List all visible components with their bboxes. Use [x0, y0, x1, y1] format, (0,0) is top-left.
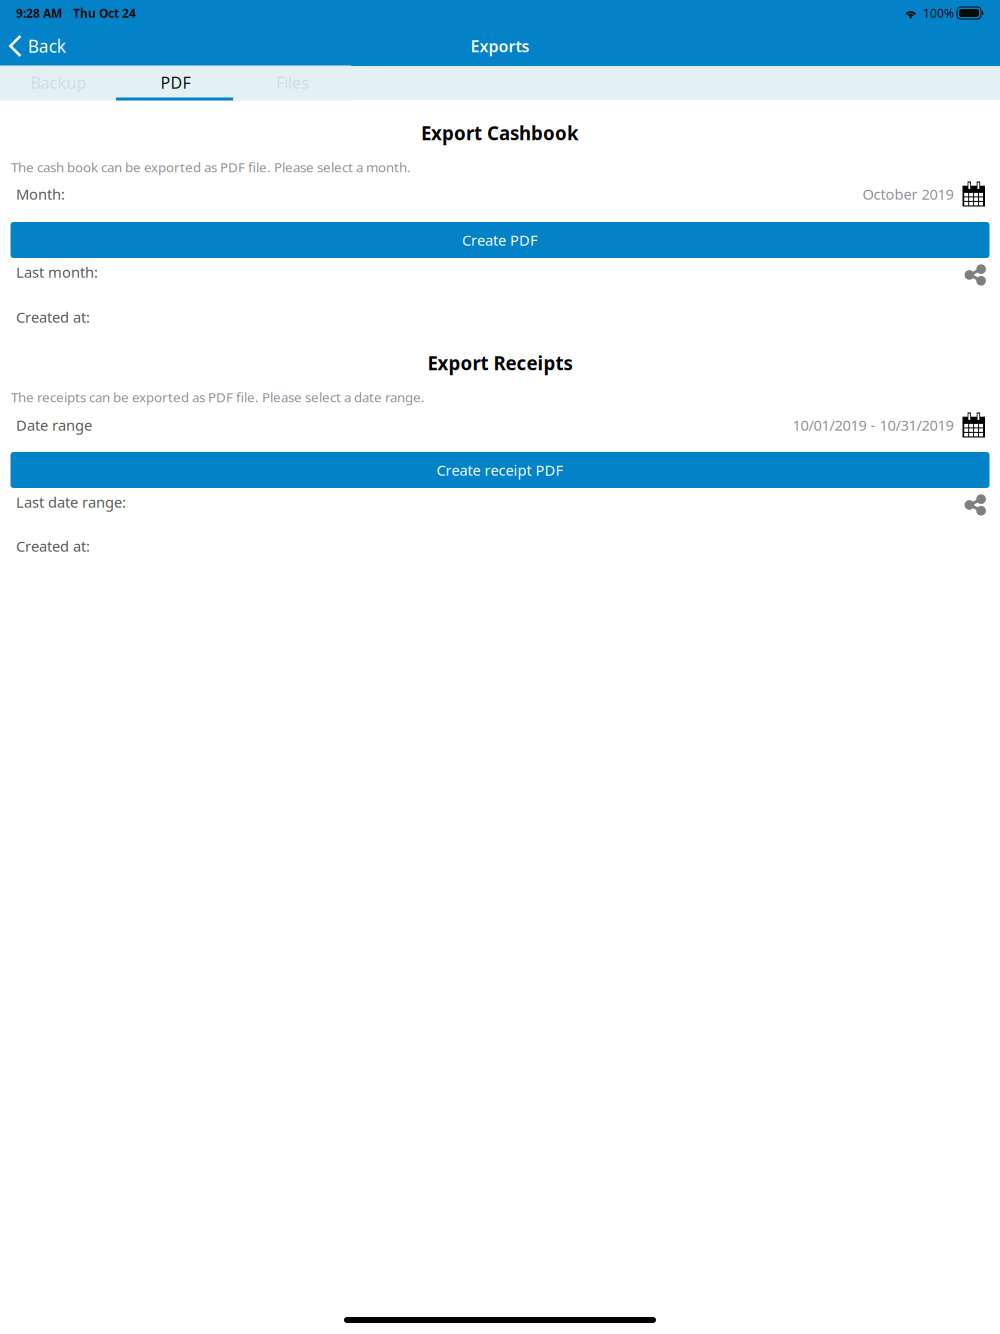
staticText: Back — [28, 34, 66, 57]
staticText: Date range — [16, 415, 92, 435]
button[interactable]: Files — [234, 65, 351, 100]
staticText: PDF — [160, 72, 190, 93]
button[interactable]: Date range — [0, 410, 1000, 440]
button[interactable]: Last date range: — [0, 487, 1000, 517]
staticText: 10/01/2019 - 10/31/2019 — [792, 415, 953, 435]
button[interactable]: Backup — [0, 65, 117, 100]
staticText: Month: — [16, 184, 65, 204]
staticText: Backup — [30, 72, 86, 93]
button[interactable]: Month: — [0, 179, 1000, 209]
staticText: Create receipt PDF — [436, 460, 563, 480]
staticText: The receipts can be exported as PDF file… — [11, 388, 425, 406]
staticText: Create PDF — [462, 230, 538, 250]
button[interactable]: Back — [0, 26, 78, 66]
staticText: Export Receipts — [427, 351, 572, 375]
button[interactable]: Create PDF — [10, 222, 989, 258]
staticText: Thu Oct 24 — [73, 5, 136, 21]
staticText: The cash book can be exported as PDF fil… — [11, 158, 411, 176]
button[interactable]: Create receipt PDF — [10, 452, 989, 488]
staticText: Last date range: — [16, 492, 126, 512]
staticText: Created at: — [16, 536, 90, 556]
staticText: Export Cashbook — [421, 121, 579, 145]
button[interactable]: PDF — [117, 65, 234, 100]
button[interactable]: Last month: — [0, 257, 1000, 287]
staticText: Files — [276, 72, 309, 93]
staticText: October 2019 — [862, 184, 953, 204]
staticText: Exports — [470, 35, 529, 57]
staticText: Created at: — [16, 307, 90, 327]
staticText: 9:28 AM — [16, 5, 62, 21]
staticText: Last month: — [16, 262, 98, 282]
staticText: 100% — [923, 5, 954, 21]
